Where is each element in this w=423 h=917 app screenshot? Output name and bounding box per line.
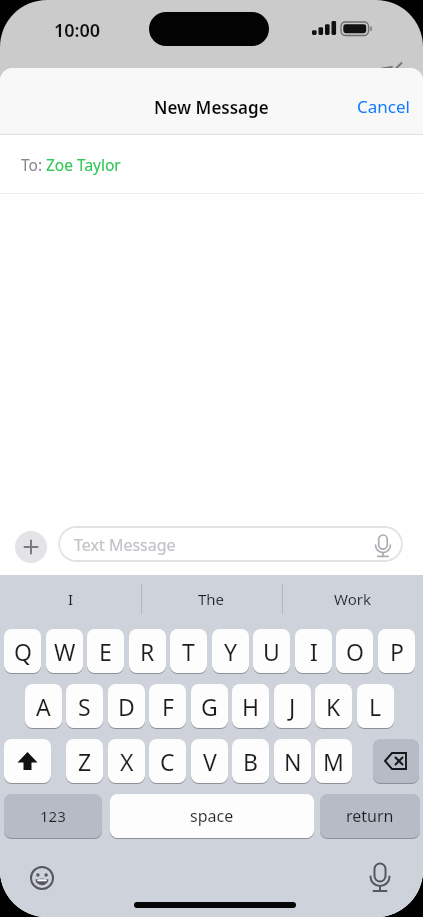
button[interactable]: W xyxy=(46,629,83,673)
staticText: The xyxy=(198,589,225,609)
button[interactable]: space xyxy=(110,794,314,838)
staticText: N xyxy=(284,746,302,777)
staticText: 10:00 xyxy=(54,18,101,43)
button[interactable]: V xyxy=(191,739,228,783)
staticText: B xyxy=(243,746,258,777)
staticText: I xyxy=(310,636,318,667)
staticText: O xyxy=(346,636,364,667)
button[interactable]: J xyxy=(274,684,311,728)
button[interactable]: Q xyxy=(4,629,41,673)
button[interactable]: N xyxy=(274,739,311,783)
button[interactable]: Y xyxy=(212,629,249,673)
staticText: New Message xyxy=(154,96,269,119)
button[interactable]: D xyxy=(108,684,145,728)
button[interactable] xyxy=(0,135,423,193)
button[interactable] xyxy=(356,852,404,900)
staticText: D xyxy=(118,691,135,722)
button[interactable]: P xyxy=(378,629,415,673)
staticText: R xyxy=(140,636,155,667)
button[interactable]: C xyxy=(149,739,186,783)
staticText: J xyxy=(289,691,296,722)
button[interactable] xyxy=(373,739,419,783)
staticText: X xyxy=(120,746,134,777)
button[interactable]: I xyxy=(295,629,332,673)
staticText: U xyxy=(263,636,280,667)
button[interactable]: R xyxy=(129,629,166,673)
button[interactable]: H xyxy=(232,684,269,728)
button[interactable]: B xyxy=(232,739,269,783)
staticText: Text Message xyxy=(74,534,176,556)
button[interactable]: return xyxy=(320,794,420,838)
staticText: W xyxy=(54,636,76,667)
staticText: K xyxy=(326,691,341,722)
staticText: To: xyxy=(21,154,43,175)
button[interactable]: A xyxy=(25,684,62,728)
staticText: return xyxy=(346,805,394,827)
staticText: Q xyxy=(14,636,32,667)
button[interactable]: G xyxy=(191,684,228,728)
staticText: C xyxy=(160,746,175,777)
staticText: Y xyxy=(224,636,238,667)
button[interactable]: L xyxy=(357,684,394,728)
staticText: Cancel xyxy=(357,95,410,118)
staticText: E xyxy=(99,636,112,667)
staticText: F xyxy=(162,691,174,722)
staticText: Zoe Taylor xyxy=(46,154,121,175)
button[interactable]: M xyxy=(315,739,352,783)
button[interactable]: X xyxy=(108,739,145,783)
button[interactable]: Work xyxy=(282,577,423,621)
staticText: 123 xyxy=(40,806,66,826)
button[interactable] xyxy=(15,531,47,563)
button[interactable]: T xyxy=(170,629,207,673)
staticText: G xyxy=(201,691,218,722)
staticText: Work xyxy=(334,589,371,609)
button[interactable]: F xyxy=(149,684,186,728)
button[interactable]: U xyxy=(253,629,290,673)
staticText: M xyxy=(323,746,344,777)
staticText: I xyxy=(68,589,74,609)
staticText: Z xyxy=(78,746,92,777)
button[interactable]: S xyxy=(66,684,103,728)
staticText: space xyxy=(190,805,234,827)
button[interactable] xyxy=(4,739,51,783)
staticText: S xyxy=(78,691,91,722)
staticText: T xyxy=(182,636,195,667)
button[interactable]: E xyxy=(87,629,124,673)
button[interactable]: The xyxy=(141,577,282,621)
staticText: V xyxy=(203,746,217,777)
button[interactable]: K xyxy=(315,684,352,728)
staticText: L xyxy=(369,691,382,722)
button[interactable]: O xyxy=(336,629,373,673)
button[interactable]: Cancel xyxy=(340,90,410,122)
staticText: H xyxy=(242,691,260,722)
button[interactable] xyxy=(18,854,66,902)
button[interactable]: Z xyxy=(66,739,103,783)
button[interactable]: Text Message xyxy=(58,526,403,562)
staticText: A xyxy=(36,691,51,722)
button[interactable]: I xyxy=(0,577,141,621)
staticText: P xyxy=(390,636,404,667)
button[interactable]: 123 xyxy=(4,794,102,838)
